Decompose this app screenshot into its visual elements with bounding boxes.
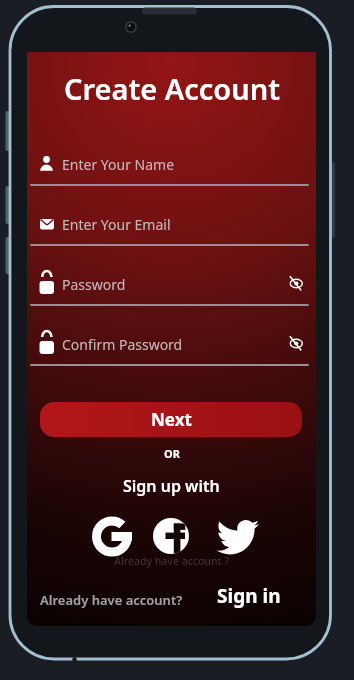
- staticText: Password: [62, 275, 126, 294]
- staticText: Already have account?: [40, 591, 183, 609]
- button[interactable]: Enter Your Name: [31, 149, 308, 179]
- staticText: Sign up with: [123, 475, 220, 497]
- staticText: OR: [164, 446, 180, 461]
- button[interactable]: Sign in: [213, 583, 285, 609]
- button[interactable]: Next: [40, 402, 302, 437]
- staticText: Create Account: [64, 69, 280, 108]
- button[interactable]: Enter Your Email: [31, 209, 308, 239]
- button[interactable]: Password: [31, 269, 308, 299]
- staticText: Enter Your Email: [62, 215, 171, 234]
- staticText: Sign in: [217, 583, 281, 609]
- staticText: Confirm Password: [62, 335, 183, 354]
- staticText: Next: [151, 408, 192, 431]
- button[interactable]: [287, 275, 305, 293]
- button[interactable]: Confirm Password: [31, 329, 308, 359]
- button[interactable]: [287, 335, 305, 353]
- staticText: Already have account ?: [114, 554, 229, 568]
- button[interactable]: [151, 513, 195, 557]
- button[interactable]: [90, 513, 134, 557]
- button[interactable]: [211, 511, 257, 555]
- staticText: Enter Your Name: [62, 155, 175, 174]
